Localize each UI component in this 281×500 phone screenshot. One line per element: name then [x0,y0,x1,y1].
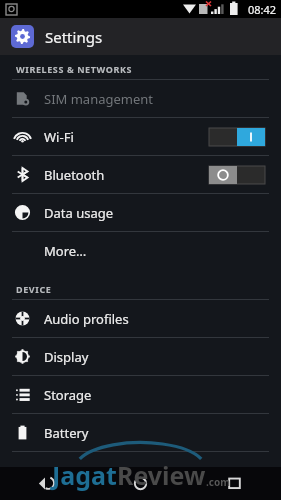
button[interactable]: Wi-Fi [0,118,281,155]
staticText: Jagat [52,458,117,492]
button[interactable]: Audio profiles [0,300,281,337]
button[interactable]: Home [93,467,187,500]
staticText: Storage [44,386,92,404]
button[interactable]: More… [0,232,281,269]
button[interactable]: Recent apps [187,467,281,500]
staticText: Wi-Fi [44,128,74,146]
button[interactable]: Settings [0,18,281,55]
button[interactable]: Display [0,338,281,375]
staticText: 08:42 [248,2,277,17]
staticText: .com [206,475,230,489]
staticText: SIM management [44,90,154,108]
staticText: Review [117,458,206,492]
button[interactable]: Bluetooth [0,156,281,193]
staticText: Display [44,348,89,366]
staticText: Data usage [44,204,114,222]
button[interactable]: SIM management [0,80,281,117]
button[interactable]: Toggle off [209,166,265,184]
button[interactable]: Storage [0,376,281,413]
staticText: Audio profiles [44,310,129,328]
staticText: More… [44,242,87,260]
button[interactable]: Toggle on [209,128,265,146]
button[interactable]: Data usage [0,194,281,231]
staticText: Battery [44,424,89,442]
staticText: Settings [45,27,103,47]
button[interactable]: Battery [0,414,281,451]
staticText: Bluetooth [44,166,105,184]
staticText: WIRELESS & NETWORKS [16,63,133,75]
button[interactable]: Back [0,467,93,500]
staticText: DEVICE [16,283,52,295]
